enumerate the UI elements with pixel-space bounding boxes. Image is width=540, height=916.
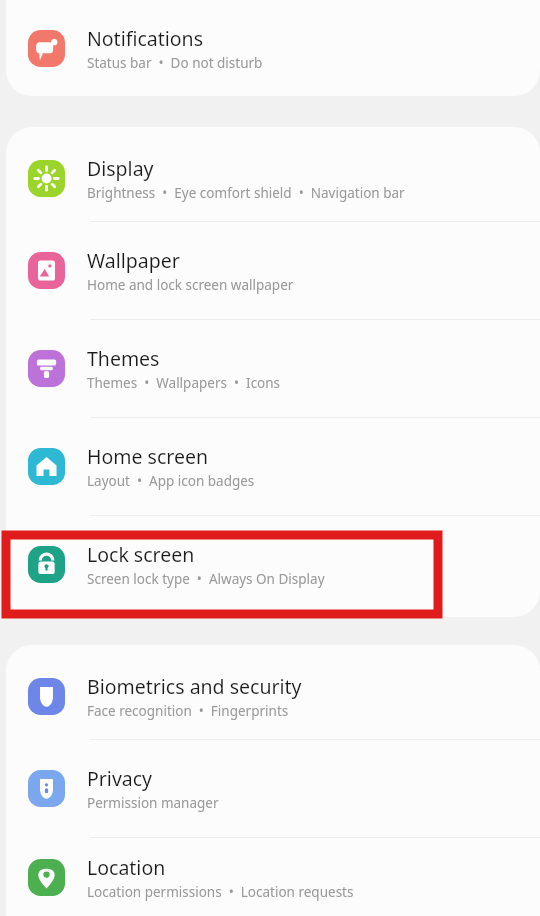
staticText: Layout • App icon badges [87,472,255,490]
button[interactable]: Themes [6,320,540,417]
staticText: Face recognition • Fingerprints [87,702,289,720]
staticText: Location [87,854,166,881]
button[interactable]: Display [6,135,540,221]
button[interactable]: Home screen [6,418,540,515]
button[interactable]: Biometrics and security [6,653,540,739]
button[interactable]: Lock screen [6,516,540,613]
staticText: Notifications [87,25,203,52]
staticText: Screen lock type • Always On Display [87,570,325,588]
button[interactable]: Notifications [6,4,540,92]
staticText: Permission manager [87,794,219,812]
staticText: Biometrics and security [87,673,302,700]
staticText: Home and lock screen wallpaper [87,276,294,294]
button[interactable]: Privacy [6,740,540,837]
staticText: Status bar • Do not disturb [87,54,263,72]
staticText: Brightness • Eye comfort shield • Naviga… [87,184,405,202]
staticText: Lock screen [87,541,195,568]
staticText: Display [87,155,154,182]
button[interactable]: Wallpaper [6,222,540,319]
staticText: Themes • Wallpapers • Icons [87,374,281,392]
staticText: Home screen [87,443,208,470]
staticText: Location permissions • Location requests [87,883,354,901]
staticText: Privacy [87,765,153,792]
staticText: Wallpaper [87,247,180,274]
staticText: Themes [87,345,160,372]
button[interactable]: Location [6,838,540,916]
